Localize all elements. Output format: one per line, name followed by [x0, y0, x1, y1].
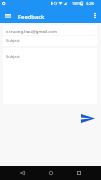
- staticText: Subject: [6, 38, 20, 43]
- staticText: v.truong.hau@gmail.com: [6, 28, 57, 34]
- staticText: Subject: [6, 54, 20, 59]
- button[interactable]: Send: [80, 110, 96, 126]
- staticText: 100%: [72, 1, 82, 6]
- button[interactable]: Back: [15, 166, 29, 180]
- button[interactable]: Subject: [3, 48, 97, 104]
- button[interactable]: More options: [88, 8, 101, 22]
- staticText: Feedback: [18, 13, 45, 21]
- button[interactable]: Recents: [72, 166, 86, 180]
- button[interactable]: Home: [44, 166, 58, 180]
- button[interactable]: Open navigation drawer: [0, 8, 16, 24]
- button[interactable]: Subject: [3, 36, 97, 46]
- button[interactable]: v.truong.hau@gmail.com: [3, 25, 97, 35]
- staticText: 3:28: [86, 1, 94, 6]
